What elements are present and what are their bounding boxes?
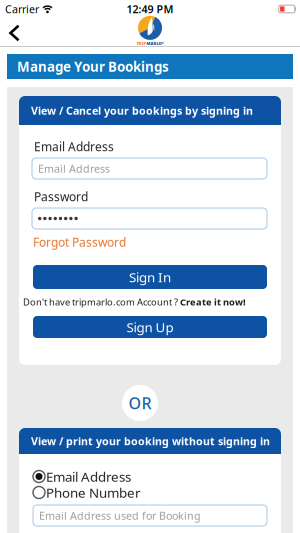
staticText: Don't have tripmarlo.com Account ? Creat…: [23, 296, 246, 308]
button[interactable]: Email Address: [33, 468, 131, 485]
staticText: Forgot Password: [33, 234, 126, 250]
staticText: 12:49 PM: [126, 2, 173, 16]
staticText: Email Address: [46, 468, 131, 485]
button[interactable]: Email Address used for Booking: [33, 505, 267, 526]
button[interactable]: [32, 208, 267, 229]
button[interactable]: [0, 22, 20, 41]
button[interactable]: Email Address: [32, 158, 267, 179]
button[interactable]: Phone Number: [33, 484, 141, 501]
button[interactable]: Don't have tripmarlo.com Account ? Creat…: [19, 289, 246, 307]
staticText: View / Cancel your bookings by signing i…: [31, 103, 253, 118]
button[interactable]: Forgot Password: [19, 229, 126, 247]
staticText: MARLO: [146, 41, 161, 46]
staticText: Sign Up: [126, 318, 173, 336]
staticText: Phone Number: [46, 484, 141, 501]
staticText: ®: [161, 42, 163, 45]
staticText: View / print your booking without signin…: [31, 434, 270, 448]
staticText: OR: [128, 392, 151, 414]
staticText: Sign In: [129, 268, 171, 286]
staticText: Manage Your Bookings: [17, 58, 169, 75]
staticText: Email Address: [34, 138, 114, 154]
button[interactable]: Sign In: [33, 265, 267, 289]
staticText: Password: [34, 188, 88, 204]
staticText: Carrier: [5, 2, 39, 16]
staticText: Email Address: [38, 161, 110, 176]
staticText: TRIP: [136, 41, 146, 46]
staticText: Email Address used for Booking: [39, 508, 201, 523]
button[interactable]: Sign Up: [33, 316, 267, 338]
